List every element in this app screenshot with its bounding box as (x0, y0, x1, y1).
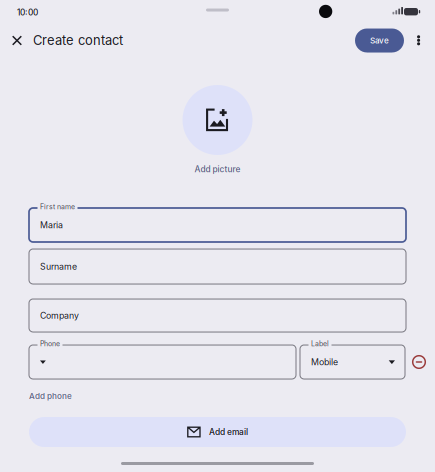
staticText: Add picture (194, 164, 240, 174)
button[interactable]: Remove phone number (412, 345, 426, 379)
staticText: Surname (40, 261, 77, 272)
staticText: Label (311, 339, 329, 348)
staticText: Phone (40, 339, 60, 348)
button[interactable]: Phone (29, 345, 296, 379)
button[interactable]: Company (29, 299, 406, 332)
button[interactable]: Surname (29, 249, 406, 284)
button[interactable]: Maria (29, 208, 406, 242)
staticText: 10:00 (17, 7, 38, 17)
staticText: First name (40, 202, 75, 211)
staticText: Create contact (33, 32, 123, 48)
staticText: Maria (40, 220, 63, 230)
button[interactable]: Save (355, 28, 404, 52)
staticText: Company (40, 310, 79, 321)
staticText: Save (370, 36, 389, 45)
button[interactable]: Add picture (162, 85, 272, 174)
button[interactable]: More options (409, 27, 429, 53)
button[interactable]: Add email (29, 417, 406, 447)
button[interactable]: Mobile (300, 345, 405, 379)
staticText: Add email (209, 427, 248, 437)
staticText: Mobile (311, 357, 338, 367)
staticText: Add phone (29, 391, 72, 401)
button[interactable]: Add phone (29, 388, 72, 404)
button[interactable]: Close (4, 27, 30, 53)
